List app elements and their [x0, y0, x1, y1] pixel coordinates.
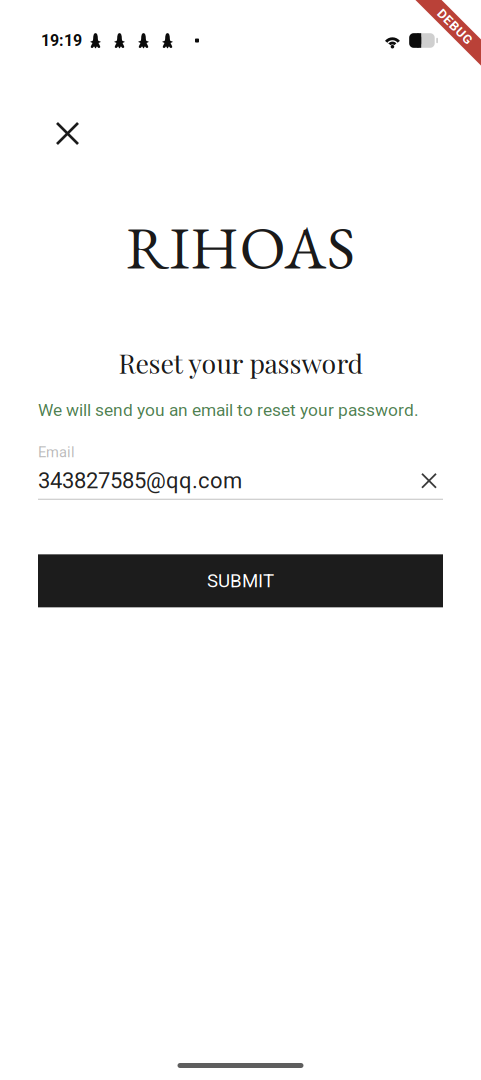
- staticText: RIHOAS: [126, 208, 355, 286]
- button[interactable]: SUBMIT: [38, 554, 443, 607]
- staticText: Reset your password: [118, 345, 362, 380]
- staticText: 19:19: [41, 31, 82, 50]
- staticText: SUBMIT: [207, 570, 274, 592]
- staticText: We will send you an email to reset your …: [38, 400, 419, 420]
- staticText: DEBUG: [433, 19, 477, 34]
- button[interactable]: Clear text: [415, 467, 443, 495]
- staticText: Email: [38, 444, 75, 461]
- button[interactable]: Close: [44, 110, 91, 157]
- staticText: 343827585@qq.com: [38, 468, 242, 494]
